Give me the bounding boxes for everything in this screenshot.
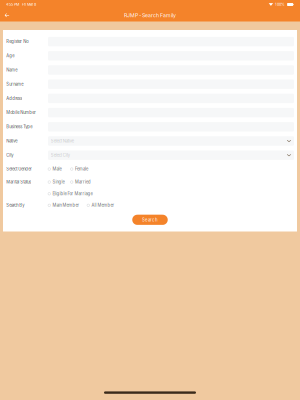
staticText: Female xyxy=(75,166,88,171)
button[interactable]: Single xyxy=(48,179,65,184)
staticText: Single xyxy=(53,179,65,184)
button[interactable]: Native xyxy=(48,136,294,146)
staticText: Select City xyxy=(51,153,70,158)
staticText: Name xyxy=(6,67,17,72)
button[interactable]: Back xyxy=(0,9,14,21)
button[interactable]: Male xyxy=(48,166,62,171)
staticText: Select Native xyxy=(51,138,74,143)
staticText: Select Gender xyxy=(6,166,32,171)
button[interactable]: Eligible For Marriage xyxy=(48,191,93,196)
staticText: All Member xyxy=(92,203,115,208)
staticText: Marital Status xyxy=(6,179,31,184)
staticText: Married xyxy=(75,179,91,184)
staticText: Search xyxy=(142,217,158,222)
staticText: Age xyxy=(6,53,14,58)
button[interactable]: Main Member xyxy=(48,203,80,208)
staticText: Native xyxy=(6,138,17,143)
staticText: Male xyxy=(53,166,62,171)
button[interactable]: Search xyxy=(132,215,168,225)
staticText: 4:55 PM Fri Mar 8 xyxy=(6,2,36,7)
button[interactable]: All Member xyxy=(87,203,115,208)
staticText: RJMP - Search Family xyxy=(124,12,176,18)
button[interactable]: Female xyxy=(70,166,88,171)
staticText: Address xyxy=(6,96,22,101)
staticText: City xyxy=(6,153,13,158)
staticText: Surname xyxy=(6,82,23,87)
staticText: Register No xyxy=(6,39,28,44)
staticText: 100% xyxy=(273,2,287,7)
staticText: Eligible For Marriage xyxy=(53,191,93,196)
staticText: Main Member xyxy=(53,203,80,208)
staticText: Search By xyxy=(6,203,24,208)
staticText: Mobile Number xyxy=(6,110,36,115)
button[interactable]: Married xyxy=(70,179,91,184)
button[interactable]: City xyxy=(48,150,294,160)
staticText: Business Type xyxy=(6,124,32,129)
